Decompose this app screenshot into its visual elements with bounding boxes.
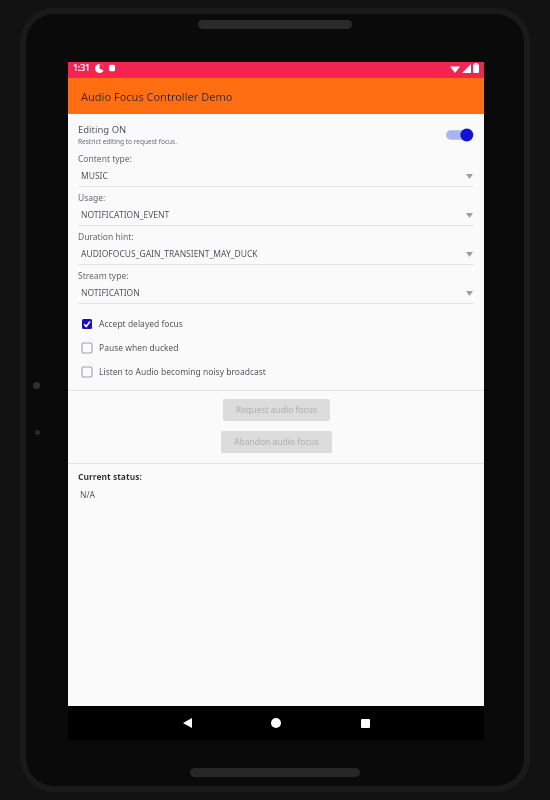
staticText: Audio Focus Controller Demo: [81, 89, 233, 104]
staticText: N/A: [80, 489, 96, 501]
staticText: 1:31: [73, 62, 90, 74]
button[interactable]: Request audio focus: [223, 399, 330, 421]
button[interactable]: Usage:: [68, 192, 484, 231]
button[interactable]: Home: [254, 706, 298, 740]
staticText: MUSIC: [81, 170, 108, 182]
button[interactable]: Accept delayed focus: [68, 312, 484, 336]
staticText: Pause when ducked: [99, 342, 179, 354]
staticText: Content type:: [78, 153, 132, 165]
button[interactable]: Pause when ducked: [68, 336, 484, 360]
button[interactable]: Stream type:: [68, 270, 484, 309]
staticText: Request audio focus: [236, 404, 317, 416]
button[interactable]: Content type:: [68, 153, 484, 192]
button[interactable]: Editing toggle: [444, 126, 474, 144]
button[interactable]: Recent apps: [343, 706, 387, 740]
staticText: Abandon audio focus: [234, 436, 319, 448]
staticText: Usage:: [78, 192, 106, 204]
staticText: Listen to Audio becoming noisy broadcast: [99, 366, 266, 378]
button[interactable]: Duration hint:: [68, 231, 484, 270]
button[interactable]: Back: [165, 706, 209, 740]
staticText: AUDIOFOCUS_GAIN_TRANSIENT_MAY_DUCK: [81, 248, 258, 260]
staticText: Duration hint:: [78, 231, 134, 243]
staticText: Stream type:: [78, 270, 129, 282]
button[interactable]: Abandon audio focus: [221, 431, 332, 453]
staticText: NOTIFICATION_EVENT: [81, 209, 170, 221]
staticText: NOTIFICATION: [81, 287, 140, 299]
staticText: Current status:: [78, 471, 142, 483]
staticText: Restrict editing to request focus.: [78, 137, 177, 146]
button[interactable]: Editing ON: [68, 121, 484, 148]
button[interactable]: Listen to Audio becoming noisy broadcast: [68, 360, 484, 384]
staticText: Accept delayed focus: [99, 318, 183, 330]
staticText: Editing ON: [78, 123, 127, 136]
